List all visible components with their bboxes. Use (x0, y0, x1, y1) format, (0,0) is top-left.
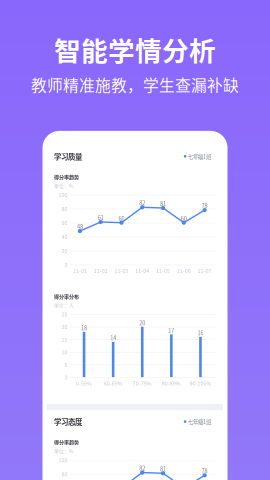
staticText: 智能学情分析 (54, 30, 216, 69)
staticText: 11-06 (177, 267, 191, 274)
staticText: 20 (139, 319, 145, 327)
staticText: 25 (61, 310, 67, 318)
staticText: 82 (139, 199, 145, 207)
staticText: 11-02 (94, 267, 108, 274)
staticText: 学习质量 (54, 151, 82, 162)
staticText: 0 (64, 261, 67, 268)
staticText: 60 (181, 214, 187, 222)
staticText: 11-07 (198, 267, 212, 274)
staticText: 七年级1班 (188, 152, 211, 160)
staticText: 单位：% (54, 447, 74, 454)
staticText: 七年级1班 (188, 418, 211, 425)
staticText: 单位：人 (54, 301, 74, 309)
staticText: 单位：% (54, 182, 74, 189)
staticText: 80 (61, 205, 67, 212)
staticText: 78 (202, 201, 208, 210)
staticText: 得分率趋势 (54, 438, 79, 446)
staticText: 得分率趋势 (54, 173, 79, 180)
staticText: 82 (139, 464, 145, 472)
staticText: 80 (61, 470, 67, 478)
staticText: 40 (61, 233, 67, 240)
staticText: 80-89% (162, 379, 181, 387)
staticText: 60 (118, 214, 124, 222)
staticText: 20 (61, 247, 67, 254)
staticText: 0 (64, 373, 67, 381)
staticText: 0-59% (76, 379, 92, 387)
staticText: 5 (64, 361, 67, 368)
staticText: 60-69% (104, 379, 123, 387)
staticText: 70-79% (133, 379, 152, 387)
staticText: 20 (61, 323, 67, 331)
staticText: 100 (58, 456, 67, 464)
staticText: 15 (61, 335, 67, 343)
staticText: 17 (168, 326, 174, 334)
staticText: 11-04 (135, 267, 149, 274)
staticText: 11-05 (156, 267, 170, 274)
staticText: 78 (202, 467, 208, 475)
staticText: 81 (160, 199, 166, 207)
staticText: 11-03 (114, 267, 128, 274)
staticText: 11-01 (73, 267, 87, 274)
staticText: 81 (160, 465, 166, 473)
staticText: 48 (77, 222, 83, 231)
staticText: 100 (58, 191, 67, 198)
staticText: 60 (61, 219, 67, 226)
staticText: 教师精准施教，学生查漏补缺 (31, 73, 239, 96)
staticText: 学习态度 (54, 416, 82, 427)
staticText: 得分率分布 (54, 293, 79, 300)
staticText: 61 (98, 213, 104, 221)
staticText: 16 (197, 329, 203, 337)
staticText: 14 (110, 334, 116, 342)
staticText: 18 (81, 324, 87, 332)
staticText: 90-100% (189, 379, 211, 387)
staticText: 10 (61, 348, 67, 356)
